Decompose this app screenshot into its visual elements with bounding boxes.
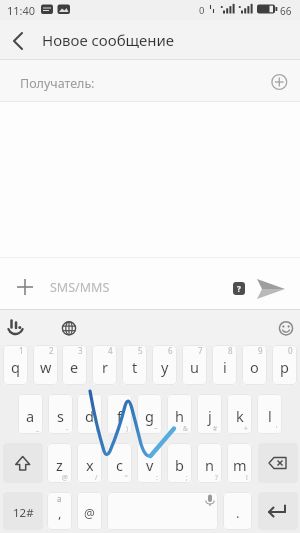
- staticText: 66: [280, 4, 292, 18]
- button[interactable]: v: [137, 443, 162, 483]
- button[interactable]: c: [107, 443, 132, 483]
- staticText: x: [86, 455, 94, 475]
- button[interactable]: [0, 60, 300, 102]
- button[interactable]: t: [122, 345, 147, 385]
- staticText: ): [126, 424, 128, 433]
- staticText: a: [26, 406, 35, 426]
- staticText: Новое сообщение: [42, 30, 175, 50]
- staticText: i: [223, 357, 227, 377]
- button[interactable]: [3, 443, 43, 483]
- button[interactable]: k: [227, 394, 252, 434]
- button[interactable]: [258, 443, 298, 483]
- staticText: 4: [108, 345, 113, 356]
- staticText: p: [280, 357, 289, 377]
- button[interactable]: w: [33, 345, 58, 385]
- staticText: 9: [258, 345, 263, 356]
- button[interactable]: .: [223, 492, 252, 530]
- button[interactable]: e: [62, 345, 87, 385]
- staticText: -: [66, 424, 69, 433]
- staticText: e: [70, 357, 79, 377]
- button[interactable]: [258, 492, 298, 530]
- staticText: 6: [168, 345, 173, 356]
- button[interactable]: n: [197, 443, 222, 483]
- button[interactable]: b: [167, 443, 192, 483]
- staticText: а: [57, 493, 62, 504]
- staticText: j: [208, 406, 212, 426]
- button[interactable]: [10, 272, 40, 302]
- staticText: ~: [154, 424, 158, 433]
- staticText: r: [102, 357, 108, 377]
- staticText: :: [156, 473, 158, 482]
- button[interactable]: f: [107, 394, 132, 434]
- button[interactable]: x: [77, 443, 102, 483]
- staticText: /: [95, 473, 98, 482]
- staticText: k: [236, 406, 244, 426]
- staticText: l: [268, 406, 272, 426]
- staticText: SMS/MMS: [50, 279, 110, 296]
- staticText: .: [236, 504, 240, 522]
- staticText: !: [246, 473, 248, 482]
- staticText: +: [244, 424, 248, 433]
- staticText: w: [40, 357, 52, 377]
- button[interactable]: ?: [233, 282, 245, 295]
- button[interactable]: r: [92, 345, 117, 385]
- staticText: ": [125, 473, 128, 482]
- button[interactable]: @: [77, 492, 102, 530]
- button[interactable]: u: [182, 345, 207, 385]
- staticText: c: [116, 455, 123, 475]
- staticText: (: [96, 424, 98, 433]
- button[interactable]: [56, 315, 82, 341]
- button[interactable]: [6, 28, 32, 54]
- staticText: ?: [237, 283, 241, 294]
- staticText: o: [250, 357, 259, 377]
- staticText: m: [233, 455, 247, 475]
- staticText: &: [183, 424, 188, 433]
- button[interactable]: q: [3, 345, 28, 385]
- staticText: ': [276, 424, 278, 433]
- button[interactable]: [264, 67, 294, 97]
- button[interactable]: z: [47, 443, 72, 483]
- staticText: ;: [186, 473, 188, 482]
- staticText: t: [132, 357, 138, 377]
- staticText: v: [146, 455, 154, 475]
- staticText: u: [190, 357, 199, 377]
- staticText: h: [175, 406, 184, 426]
- button[interactable]: g: [137, 394, 162, 434]
- button[interactable]: [107, 492, 218, 530]
- button[interactable]: y: [152, 345, 177, 385]
- button[interactable]: [4, 314, 30, 340]
- button[interactable]: h: [167, 394, 192, 434]
- button[interactable]: ,: [47, 492, 72, 530]
- button[interactable]: l: [257, 394, 282, 434]
- button[interactable]: s: [48, 394, 73, 434]
- staticText: f: [117, 406, 122, 426]
- button[interactable]: i: [212, 345, 237, 385]
- button[interactable]: m: [227, 443, 252, 483]
- staticText: y: [161, 357, 169, 377]
- staticText: @: [84, 505, 95, 521]
- staticText: g: [145, 406, 154, 426]
- staticText: #: [213, 424, 218, 433]
- button[interactable]: j: [197, 394, 222, 434]
- staticText: 2: [49, 345, 54, 356]
- staticText: q: [11, 357, 20, 377]
- staticText: 12#: [13, 505, 34, 521]
- staticText: 0: [199, 4, 205, 17]
- staticText: 0: [288, 345, 293, 356]
- button[interactable]: [273, 315, 299, 341]
- staticText: 5: [138, 345, 143, 356]
- staticText: 11:40: [7, 3, 36, 18]
- staticText: 7: [198, 345, 203, 356]
- button[interactable]: 12#: [3, 492, 43, 530]
- button[interactable]: p: [272, 345, 297, 385]
- staticText: z: [56, 455, 63, 475]
- button[interactable]: a: [18, 394, 43, 434]
- button[interactable]: o: [242, 345, 267, 385]
- staticText: d: [85, 406, 94, 426]
- button[interactable]: [252, 274, 292, 304]
- staticText: b: [175, 455, 184, 475]
- staticText: s: [57, 406, 64, 426]
- staticText: n: [205, 455, 214, 475]
- staticText: 3: [78, 345, 83, 356]
- button[interactable]: d: [77, 394, 102, 434]
